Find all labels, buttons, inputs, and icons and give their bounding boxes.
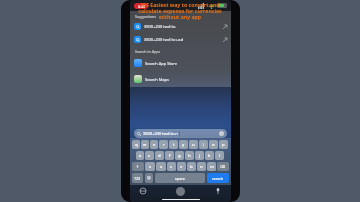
button[interactable]: y — [179, 140, 188, 149]
button[interactable]: ☺ — [145, 173, 153, 183]
button[interactable]: h — [185, 151, 194, 160]
button[interactable]: ⌫ — [217, 162, 229, 171]
button[interactable]: e — [150, 140, 158, 149]
button[interactable]: search — [207, 173, 229, 183]
button[interactable]: i — [199, 140, 208, 149]
button[interactable]: z — [145, 162, 155, 171]
button[interactable]: v — [177, 162, 186, 171]
staticText: Search Maps — [145, 77, 169, 82]
staticText: q — [135, 142, 138, 148]
staticText: i — [203, 142, 205, 148]
button[interactable]: r — [159, 140, 168, 149]
staticText: ⌫ — [220, 165, 226, 169]
button[interactable]: l — [215, 151, 224, 160]
staticText: l — [219, 153, 221, 159]
button[interactable]: t — [169, 140, 178, 149]
staticText: x — [160, 164, 163, 170]
button[interactable]: m — [207, 162, 216, 171]
staticText: search — [212, 176, 224, 181]
staticText: j — [199, 153, 201, 159]
button[interactable]: n — [197, 162, 206, 171]
staticText: 3500+230 twd to usd — [144, 37, 184, 42]
button[interactable]: j — [195, 151, 204, 160]
staticText: t — [173, 142, 175, 148]
staticText: d — [158, 153, 161, 159]
button[interactable]: g — [175, 151, 184, 160]
staticText: 4:48 — [138, 4, 145, 9]
staticText: h — [188, 153, 191, 159]
staticText: r — [163, 142, 165, 148]
button[interactable]: space — [155, 173, 205, 183]
button[interactable]: 123 — [132, 173, 143, 183]
staticText: f — [169, 153, 171, 159]
button[interactable]: b — [187, 162, 196, 171]
button[interactable]: a — [136, 151, 144, 160]
button[interactable]: q — [132, 140, 140, 149]
button[interactable]: o — [209, 140, 218, 149]
staticText: g — [178, 153, 181, 159]
staticText: e — [153, 142, 156, 148]
button[interactable]: 3500+230 twd to usd — [130, 33, 231, 46]
staticText: Search App Store — [145, 61, 178, 66]
staticText: m — [210, 164, 214, 170]
button[interactable]: Dictate — [215, 188, 221, 194]
button[interactable]: Record — [176, 187, 185, 196]
staticText: Suggestions — [135, 14, 157, 19]
button[interactable]: d — [155, 151, 164, 160]
staticText: 3500+230 twd to n — [143, 131, 178, 136]
staticText: ☺ — [147, 176, 151, 180]
button[interactable]: Search Maps — [130, 71, 231, 87]
staticText: o — [212, 142, 215, 148]
staticText: k — [208, 153, 211, 159]
staticText: ⇧ — [136, 165, 140, 169]
staticText: v — [180, 164, 183, 170]
button[interactable]: k — [205, 151, 214, 160]
staticText: z — [149, 164, 151, 170]
button[interactable]: Search App Store — [130, 55, 231, 71]
staticText: iOS Easiest way to convert and calculate… — [132, 1, 228, 20]
staticText: w — [143, 142, 147, 148]
button[interactable]: 3500+230 twd to n — [134, 129, 227, 138]
staticText: 123 — [134, 176, 141, 181]
button[interactable]: 3500+230 twd to — [130, 20, 231, 33]
button[interactable]: s — [145, 151, 154, 160]
staticText: u — [192, 142, 195, 148]
button[interactable]: p — [219, 140, 228, 149]
staticText: a — [139, 153, 142, 159]
staticText: y — [182, 142, 185, 148]
staticText: n — [200, 164, 203, 170]
staticText: space — [175, 176, 185, 181]
button[interactable]: u — [189, 140, 198, 149]
staticText: p — [222, 142, 225, 148]
button[interactable]: f — [165, 151, 174, 160]
button[interactable]: Globe — [140, 188, 146, 194]
staticText: 3500+230 twd to — [144, 24, 176, 29]
staticText: c — [170, 164, 173, 170]
staticText: s — [148, 153, 151, 159]
staticText: Search in Apps — [135, 49, 161, 54]
button[interactable]: c — [167, 162, 176, 171]
staticText: b — [190, 164, 193, 170]
button[interactable]: x — [156, 162, 166, 171]
button[interactable]: w — [141, 140, 149, 149]
button[interactable]: ⇧ — [132, 162, 144, 171]
